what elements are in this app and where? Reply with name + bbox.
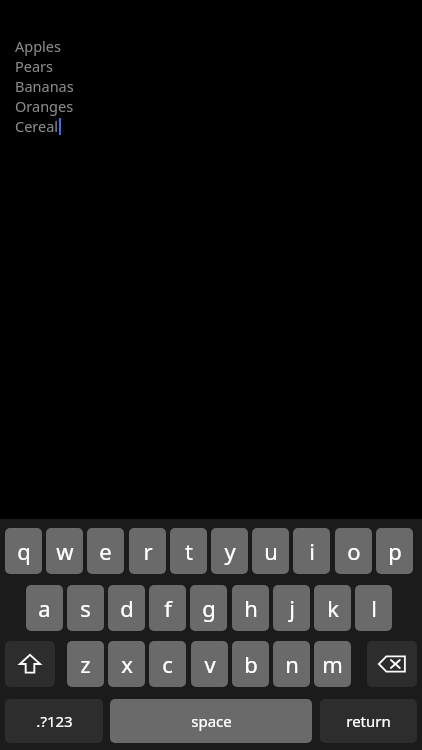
staticText: w [56, 536, 74, 566]
button[interactable]: space [110, 699, 312, 743]
button[interactable]: r [129, 528, 166, 574]
staticText: Cereal [15, 116, 59, 136]
staticText: j [289, 593, 295, 623]
staticText: b [244, 649, 258, 679]
staticText: i [309, 536, 315, 566]
button[interactable]: q [5, 528, 42, 574]
button[interactable]: s [67, 585, 104, 631]
staticText: g [202, 593, 216, 623]
staticText: u [264, 536, 278, 566]
button[interactable]: e [87, 528, 124, 574]
staticText: Pears [15, 56, 54, 76]
staticText: space [191, 711, 232, 731]
button[interactable]: p [376, 528, 413, 574]
button[interactable]: z [67, 641, 104, 687]
button[interactable]: o [335, 528, 372, 574]
button[interactable]: m [314, 641, 351, 687]
staticText: Oranges [15, 96, 74, 116]
button[interactable]: n [273, 641, 310, 687]
staticText: l [371, 593, 377, 623]
button[interactable]: Backspace [367, 641, 417, 687]
button[interactable]: j [273, 585, 310, 631]
button[interactable]: a [26, 585, 63, 631]
staticText: return [346, 711, 391, 731]
staticText: d [120, 593, 134, 623]
staticText: Bananas [15, 76, 74, 96]
staticText: a [38, 593, 51, 623]
staticText: x [121, 649, 133, 679]
staticText: e [99, 536, 112, 566]
button[interactable]: return [320, 699, 417, 743]
button[interactable]: .?123 [5, 699, 103, 743]
staticText: f [164, 593, 172, 623]
button[interactable]: x [108, 641, 145, 687]
button[interactable]: y [211, 528, 248, 574]
staticText: p [388, 536, 402, 566]
staticText: Apples [15, 36, 61, 56]
staticText: h [244, 593, 258, 623]
button[interactable]: c [149, 641, 186, 687]
button[interactable]: k [314, 585, 351, 631]
staticText: .?123 [36, 711, 73, 731]
staticText: s [80, 593, 91, 623]
staticText: z [80, 649, 91, 679]
button[interactable]: v [191, 641, 228, 687]
button[interactable]: b [232, 641, 269, 687]
staticText: t [185, 536, 193, 566]
button[interactable]: i [293, 528, 330, 574]
button[interactable]: t [170, 528, 207, 574]
staticText: c [162, 649, 173, 679]
staticText: o [347, 536, 361, 566]
button[interactable]: u [252, 528, 289, 574]
staticText: n [285, 649, 299, 679]
button[interactable]: w [46, 528, 83, 574]
staticText: q [17, 536, 31, 566]
button[interactable]: g [190, 585, 227, 631]
staticText: v [204, 649, 216, 679]
staticText: m [322, 649, 343, 679]
staticText: r [143, 536, 153, 566]
button[interactable]: d [108, 585, 145, 631]
button[interactable]: f [149, 585, 186, 631]
staticText: k [327, 593, 339, 623]
button[interactable]: h [232, 585, 269, 631]
staticText: y [224, 536, 236, 566]
button[interactable]: Shift [5, 641, 55, 687]
button[interactable]: l [355, 585, 392, 631]
